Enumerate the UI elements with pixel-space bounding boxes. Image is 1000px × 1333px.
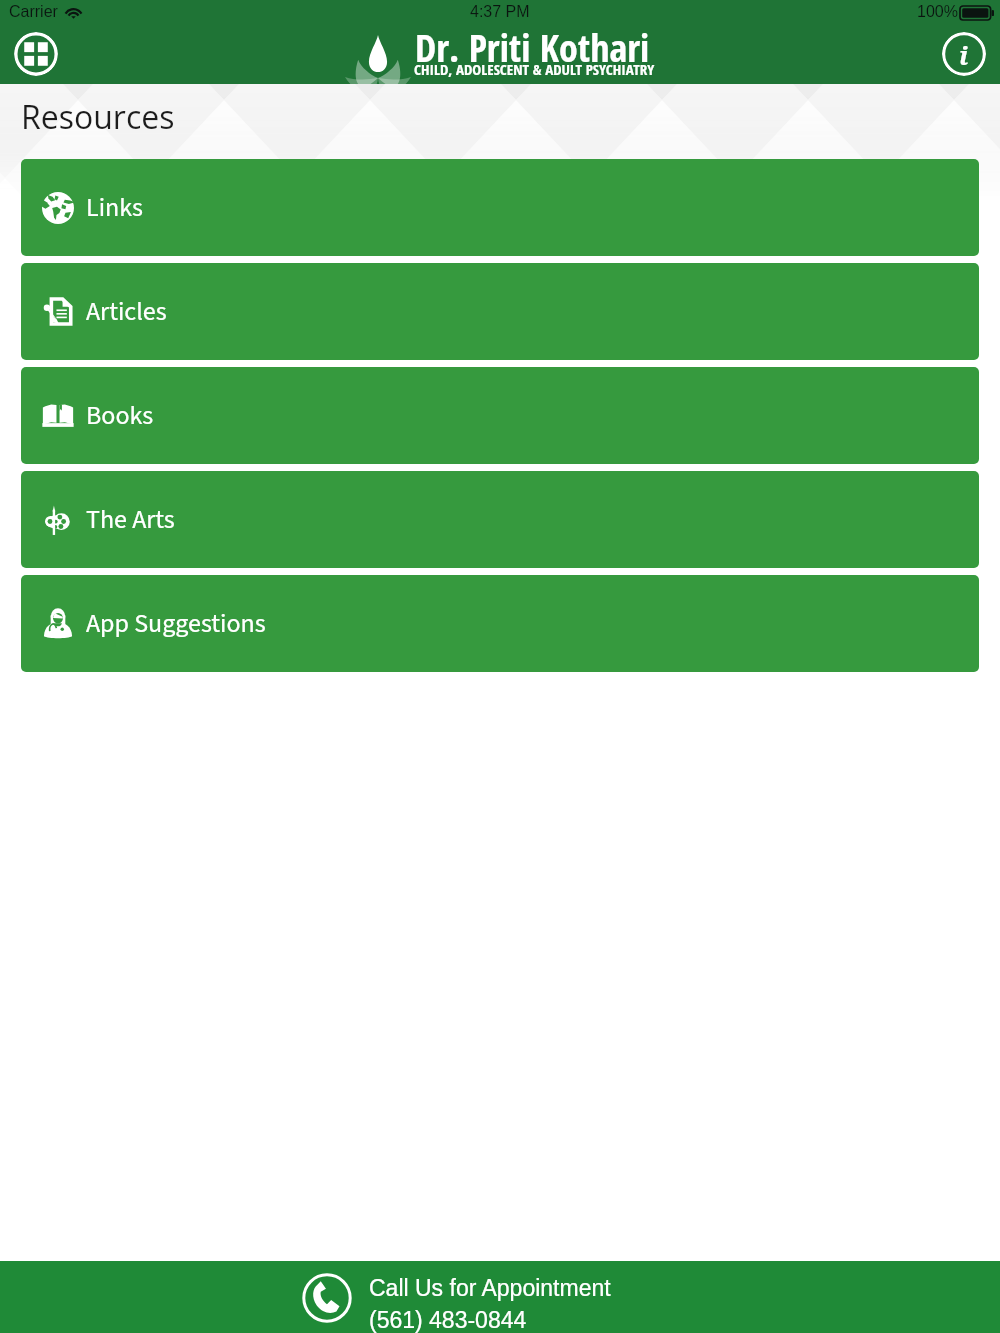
button[interactable]: Menu [14, 32, 58, 76]
button[interactable]: Books [21, 367, 979, 464]
button[interactable]: Info [942, 32, 986, 76]
staticText: Links [86, 189, 144, 226]
button[interactable]: Links [21, 159, 979, 256]
staticText: 4:37 PM [470, 3, 530, 21]
staticText: Resources [21, 95, 175, 139]
staticText: The Arts [86, 501, 175, 538]
staticText: Articles [86, 293, 167, 330]
button[interactable]: Call Us for Appointment (561) 483-0844 [0, 1261, 1000, 1333]
button[interactable]: The Arts [21, 471, 979, 568]
staticText: Carrier [9, 3, 58, 21]
staticText: Call Us for Appointment [369, 1275, 611, 1301]
staticText: App Suggestions [86, 605, 266, 642]
button[interactable]: App Suggestions [21, 575, 979, 672]
staticText: CHILD, ADOLESCENT & ADULT PSYCHIATRY [414, 59, 655, 79]
staticText: (561) 483-0844 [369, 1307, 527, 1333]
staticText: i [959, 37, 969, 72]
staticText: 100% [917, 3, 958, 21]
button[interactable]: Articles [21, 263, 979, 360]
staticText: Books [86, 397, 154, 434]
staticText: Dr. Priti Kothari [415, 21, 650, 73]
